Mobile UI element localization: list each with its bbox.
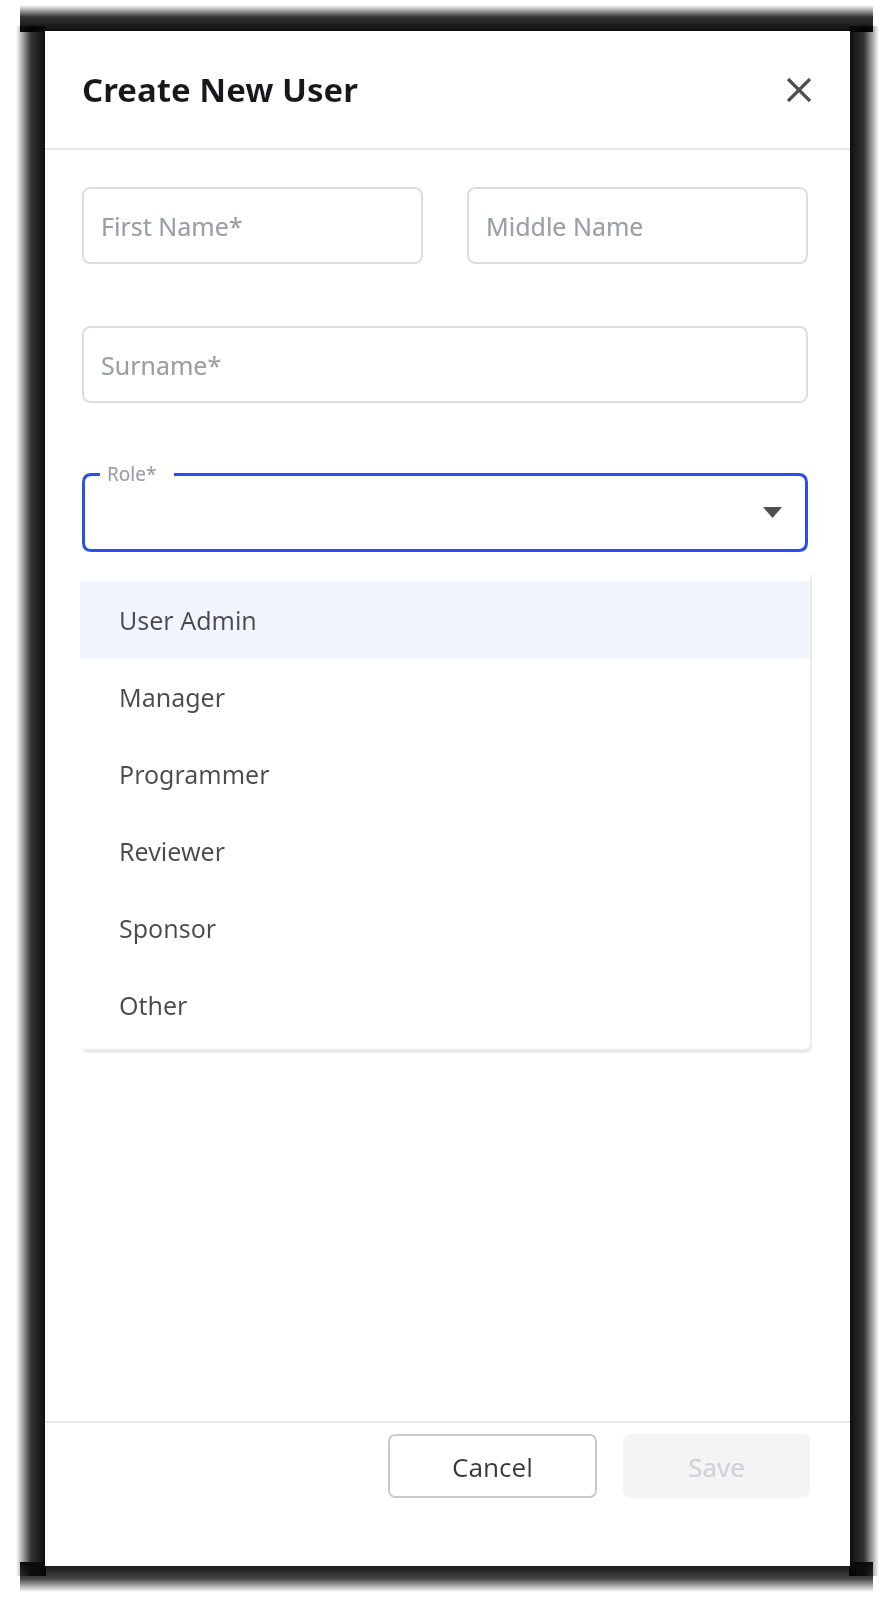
staticText: Other <box>119 988 188 1022</box>
button[interactable]: Cancel <box>388 1434 597 1498</box>
staticText: Save <box>688 1449 745 1484</box>
button[interactable]: Sponsor <box>80 889 810 966</box>
button[interactable]: Save <box>623 1434 810 1498</box>
staticText: Reviewer <box>119 834 225 868</box>
button[interactable]: User Admin <box>80 581 810 658</box>
other: Open role list <box>763 507 782 518</box>
button[interactable]: Surname* <box>82 326 808 403</box>
button[interactable]: Close <box>775 66 823 114</box>
staticText: Create New User <box>82 67 359 112</box>
staticText: First Name* <box>101 209 243 243</box>
staticText: Manager <box>119 680 225 714</box>
staticText: Surname* <box>101 348 222 382</box>
button[interactable]: Reviewer <box>80 812 810 889</box>
button[interactable]: First Name* <box>82 187 423 264</box>
button[interactable]: Open role list <box>82 473 808 552</box>
button[interactable]: Manager <box>80 658 810 735</box>
button[interactable]: Other <box>80 966 810 1043</box>
staticText: Programmer <box>119 757 270 791</box>
button[interactable]: Middle Name <box>467 187 808 264</box>
staticText: Sponsor <box>119 911 217 945</box>
staticText: User Admin <box>119 603 257 637</box>
staticText: Cancel <box>452 1449 533 1484</box>
staticText: Middle Name <box>486 209 644 243</box>
staticText: Role* <box>107 461 157 487</box>
button[interactable]: Programmer <box>80 735 810 812</box>
